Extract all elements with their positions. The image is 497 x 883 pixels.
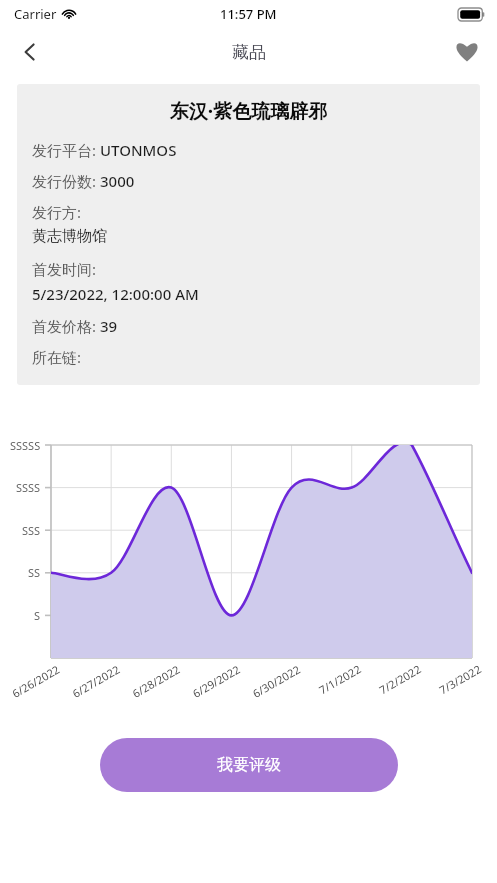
staticText: 我要评级 <box>217 755 281 775</box>
staticText: 发行份数: <box>32 171 100 191</box>
staticText: 藏品 <box>232 42 266 63</box>
staticText: 首发时间: <box>32 259 97 279</box>
staticText: 所在链: <box>32 347 82 367</box>
staticText: 发行平台: <box>32 140 100 160</box>
staticText: 发行方: <box>32 202 82 222</box>
button[interactable]: Favorite <box>445 30 489 74</box>
staticText: 东汉·紫色琉璃辟邪 <box>32 98 465 124</box>
staticText: 5/23/2022, 12:00:00 AM <box>32 284 199 304</box>
staticText: 11:57 PM <box>220 5 277 23</box>
staticText: UTONMOS <box>100 140 177 160</box>
staticText: 首发价格: <box>32 316 100 336</box>
staticText: 39 <box>100 316 118 336</box>
staticText: 黄志博物馆 <box>32 227 107 246</box>
staticText: Carrier <box>14 5 57 23</box>
button[interactable]: 我要评级 <box>100 738 398 792</box>
button[interactable]: Back <box>8 30 52 74</box>
staticText: 3000 <box>100 171 135 191</box>
